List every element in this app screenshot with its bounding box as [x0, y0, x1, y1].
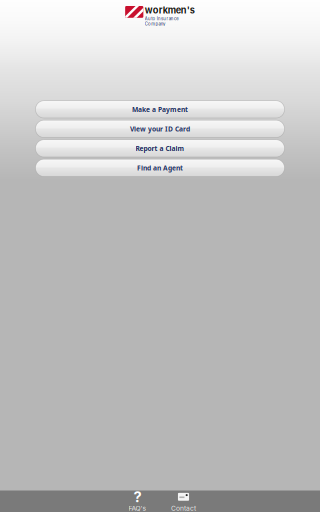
button[interactable]: View your ID Card — [35, 120, 284, 138]
staticText: Auto Insurance Company — [145, 16, 178, 26]
staticText: Report a Claim — [135, 144, 184, 153]
button[interactable]: Contact — [160, 490, 206, 512]
staticText: Find an Agent — [137, 163, 183, 172]
staticText: FAQ's — [128, 504, 146, 512]
button[interactable]: Find an Agent — [35, 159, 284, 177]
staticText: Make a Payment — [132, 105, 188, 114]
button[interactable]: Report a Claim — [35, 140, 284, 157]
button[interactable]: Make a Payment — [35, 101, 284, 118]
staticText: View your ID Card — [130, 124, 190, 133]
staticText: workmen's — [145, 4, 195, 16]
staticText: Contact — [171, 504, 196, 512]
staticText: ? — [133, 488, 141, 506]
button[interactable]: ? — [114, 490, 160, 512]
